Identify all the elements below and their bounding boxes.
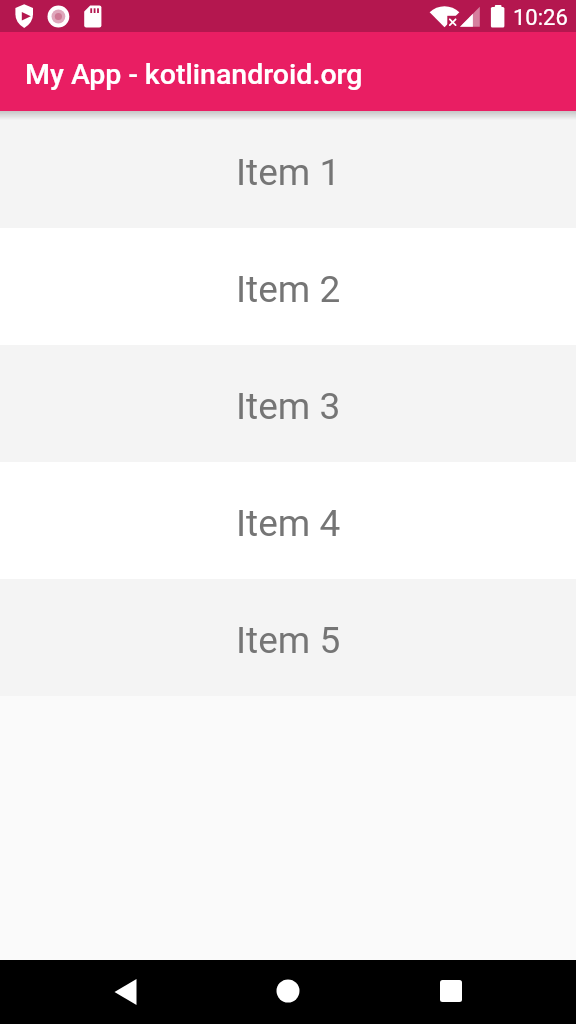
button[interactable]: Item 4: [0, 462, 576, 579]
button[interactable]: Item 3: [0, 345, 576, 462]
staticText: Item 5: [236, 619, 341, 662]
button[interactable]: [419, 960, 483, 1024]
staticText: My App - kotlinandroid.org: [25, 58, 363, 91]
button[interactable]: [256, 960, 320, 1024]
button[interactable]: Item 1: [0, 111, 576, 228]
staticText: Item 2: [236, 268, 341, 311]
button[interactable]: [93, 960, 157, 1024]
staticText: Item 3: [236, 385, 341, 428]
staticText: Item 4: [236, 502, 341, 545]
staticText: Item 1: [236, 151, 341, 194]
button[interactable]: Item 5: [0, 579, 576, 696]
staticText: 10:26: [513, 5, 568, 31]
button[interactable]: Item 2: [0, 228, 576, 345]
